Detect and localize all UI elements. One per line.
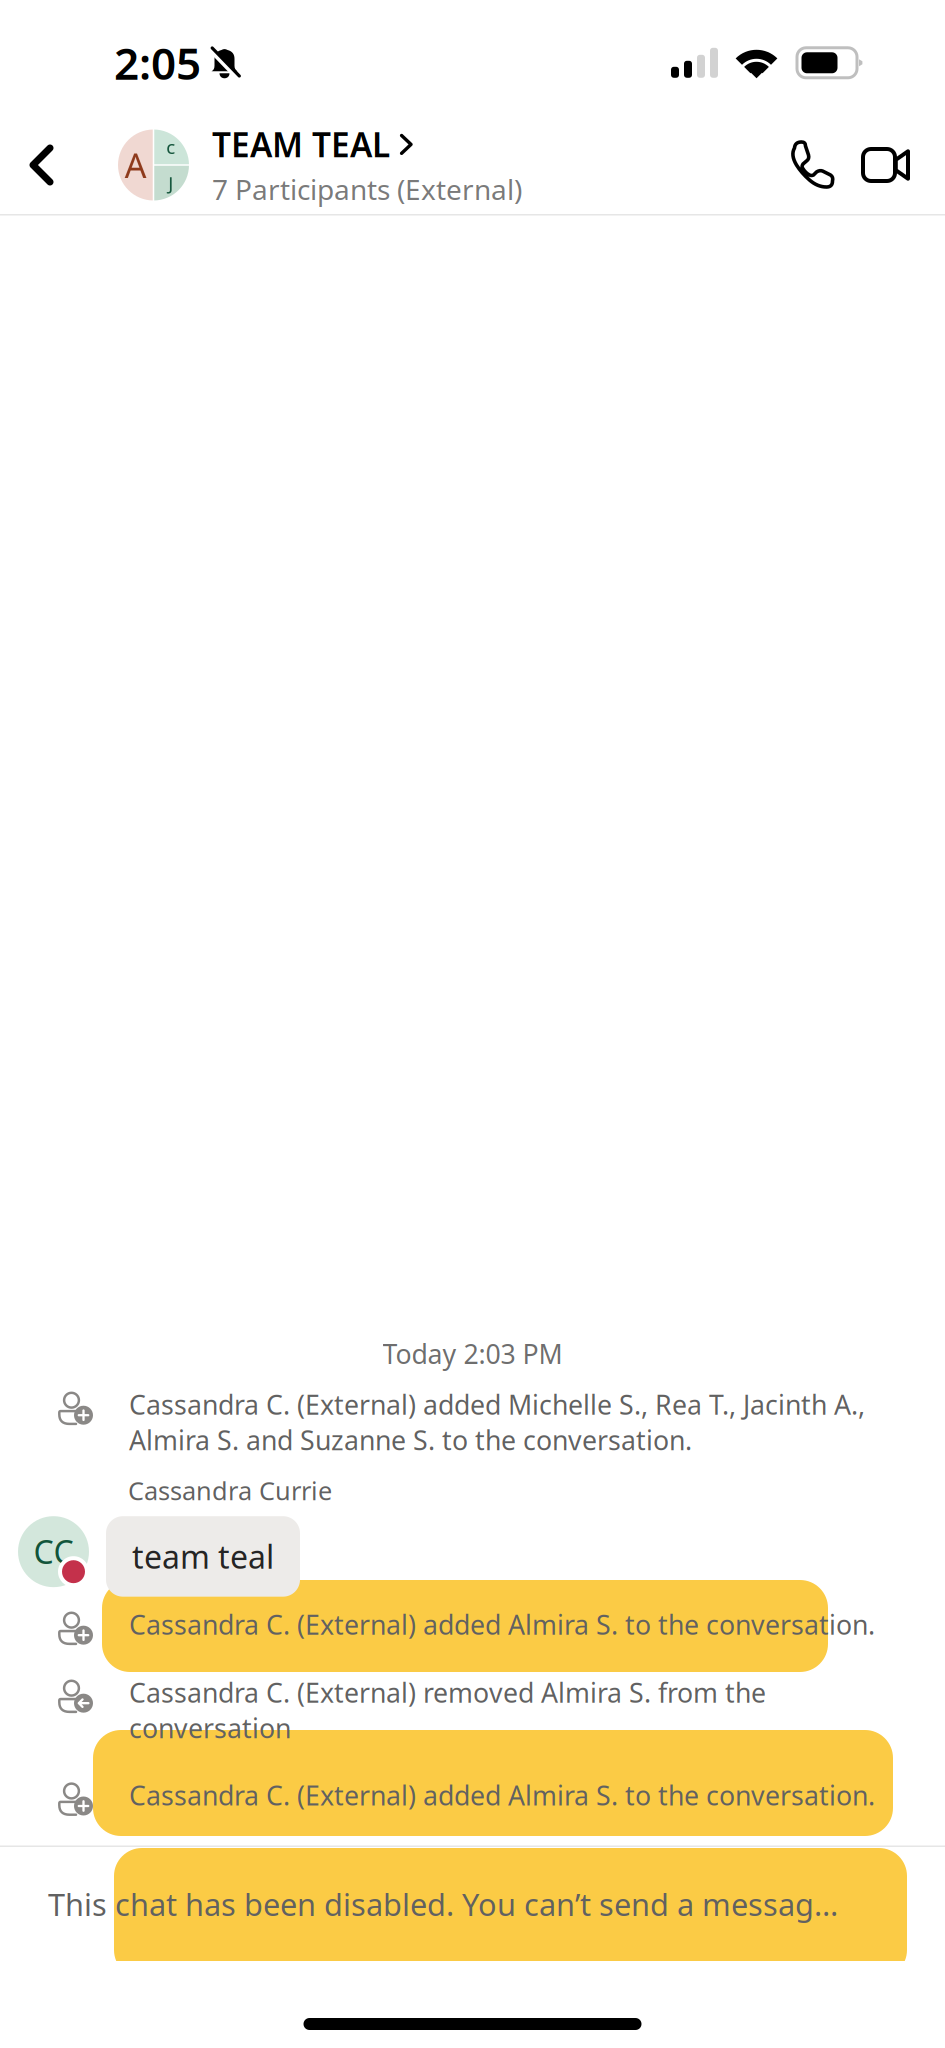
staticText: team teal [132, 1535, 274, 1578]
staticText: Today 2:03 PM [382, 1336, 562, 1371]
staticText: Cassandra C. (External) removed Almira S… [129, 1675, 766, 1745]
staticText: TEAM TEAL [212, 122, 390, 167]
staticText: This chat has been disabled. You can’t s… [48, 1884, 838, 1924]
button[interactable]: A [83, 121, 522, 208]
staticText: Cassandra C. (External) added Almira S. … [129, 1607, 875, 1642]
staticText: Cassandra C. (External) added Almira S. … [129, 1777, 875, 1813]
staticText: A [124, 142, 146, 188]
staticText: Cassandra Currie [128, 1473, 332, 1507]
button[interactable]: This chat has been disabled. You can’t s… [0, 1847, 945, 1961]
button[interactable]: Audio call [775, 121, 849, 209]
staticText: c [166, 134, 175, 159]
staticText: 7 Participants (External) [212, 170, 522, 208]
staticText: Cassandra C. (External) added Michelle S… [129, 1387, 865, 1457]
button[interactable]: Back [0, 121, 83, 209]
button[interactable]: Video call [849, 121, 923, 209]
staticText: CC [33, 1530, 73, 1573]
staticText: J [168, 171, 173, 195]
staticText: 2:05 [114, 34, 201, 92]
